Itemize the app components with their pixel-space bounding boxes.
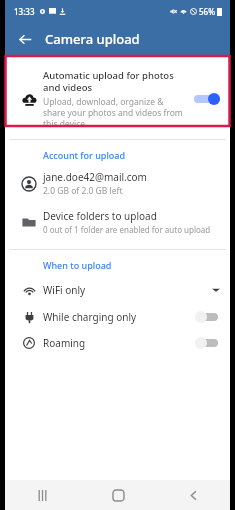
button[interactable]: Back [178,480,208,510]
staticText: Account for upload [43,149,126,161]
button[interactable] [192,333,222,353]
button[interactable]: Automatic upload for photos and videos [5,63,230,135]
button[interactable]: Back [13,27,37,51]
button[interactable]: While charging only [5,304,230,330]
button[interactable]: Roaming [5,330,230,356]
staticText: 0 out of 1 folder are enabled for auto u… [43,224,211,235]
staticText: 56% [199,6,215,17]
button[interactable]: Recent apps [27,480,57,510]
staticText: When to upload [43,259,112,271]
staticText: 2.0 GB of 2.0 GB left [43,185,123,197]
staticText: Roaming [43,336,192,350]
staticText: WiFi only [43,283,212,297]
button[interactable]: jane.doe42@mail.com [5,166,230,203]
button[interactable]: Home [103,480,133,510]
staticText: Camera upload [45,30,140,48]
staticText: Automatic upload for photos and videos [43,69,186,94]
button[interactable]: WiFi only [5,276,230,304]
staticText: Upload, download, organize & share your … [43,96,186,129]
button[interactable] [192,307,222,327]
staticText: While charging only [43,310,192,324]
button[interactable] [192,89,222,109]
staticText: Device folders to upload [43,209,157,223]
staticText: jane.doe42@mail.com [43,170,147,184]
staticText: 13:33 [14,6,35,17]
button[interactable]: Device folders to upload [5,203,230,241]
